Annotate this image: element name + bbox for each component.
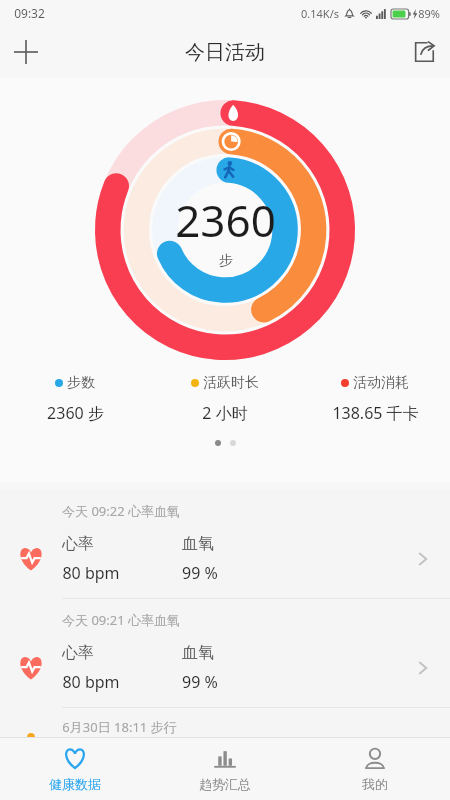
- staticText: 89%: [418, 6, 440, 21]
- staticText: 心率: [62, 643, 94, 663]
- button[interactable]: Add: [0, 26, 52, 78]
- staticText: 今天 09:21 心率血氧: [62, 611, 180, 629]
- staticText: 活跃时长: [203, 374, 259, 392]
- button[interactable]: 趋势汇总: [150, 738, 300, 800]
- staticText: 09:32: [14, 5, 45, 21]
- staticText: 活动消耗: [353, 374, 409, 392]
- staticText: 趋势汇总: [199, 776, 251, 792]
- staticText: 今日活动: [185, 40, 265, 65]
- staticText: 2360: [175, 190, 276, 250]
- staticText: 血氧: [182, 534, 214, 554]
- staticText: 80 bpm: [62, 671, 120, 693]
- staticText: 我的: [362, 776, 388, 792]
- staticText: 80 bpm: [62, 562, 120, 584]
- staticText: 6月30日 18:11 步行: [62, 718, 177, 736]
- staticText: 血氧: [182, 643, 214, 663]
- button[interactable]: 健康数据: [0, 738, 150, 800]
- staticText: 2 小时: [202, 402, 248, 424]
- button[interactable]: 今天 09:21 心率血氧: [0, 599, 450, 708]
- button[interactable]: 今天 09:22 心率血氧: [0, 490, 450, 599]
- staticText: 步数: [67, 374, 95, 392]
- staticText: 0.14K/s: [301, 6, 339, 21]
- staticText: 99 %: [182, 671, 218, 693]
- staticText: 99 %: [182, 562, 218, 584]
- staticText: 心率: [62, 534, 94, 554]
- button[interactable]: Share: [398, 26, 450, 78]
- staticText: 2360 步: [47, 402, 104, 424]
- button[interactable]: 我的: [300, 738, 450, 800]
- staticText: 138.65 千卡: [332, 402, 419, 424]
- staticText: 今天 09:22 心率血氧: [62, 502, 180, 520]
- staticText: 步: [219, 252, 233, 270]
- staticText: 健康数据: [49, 776, 101, 792]
